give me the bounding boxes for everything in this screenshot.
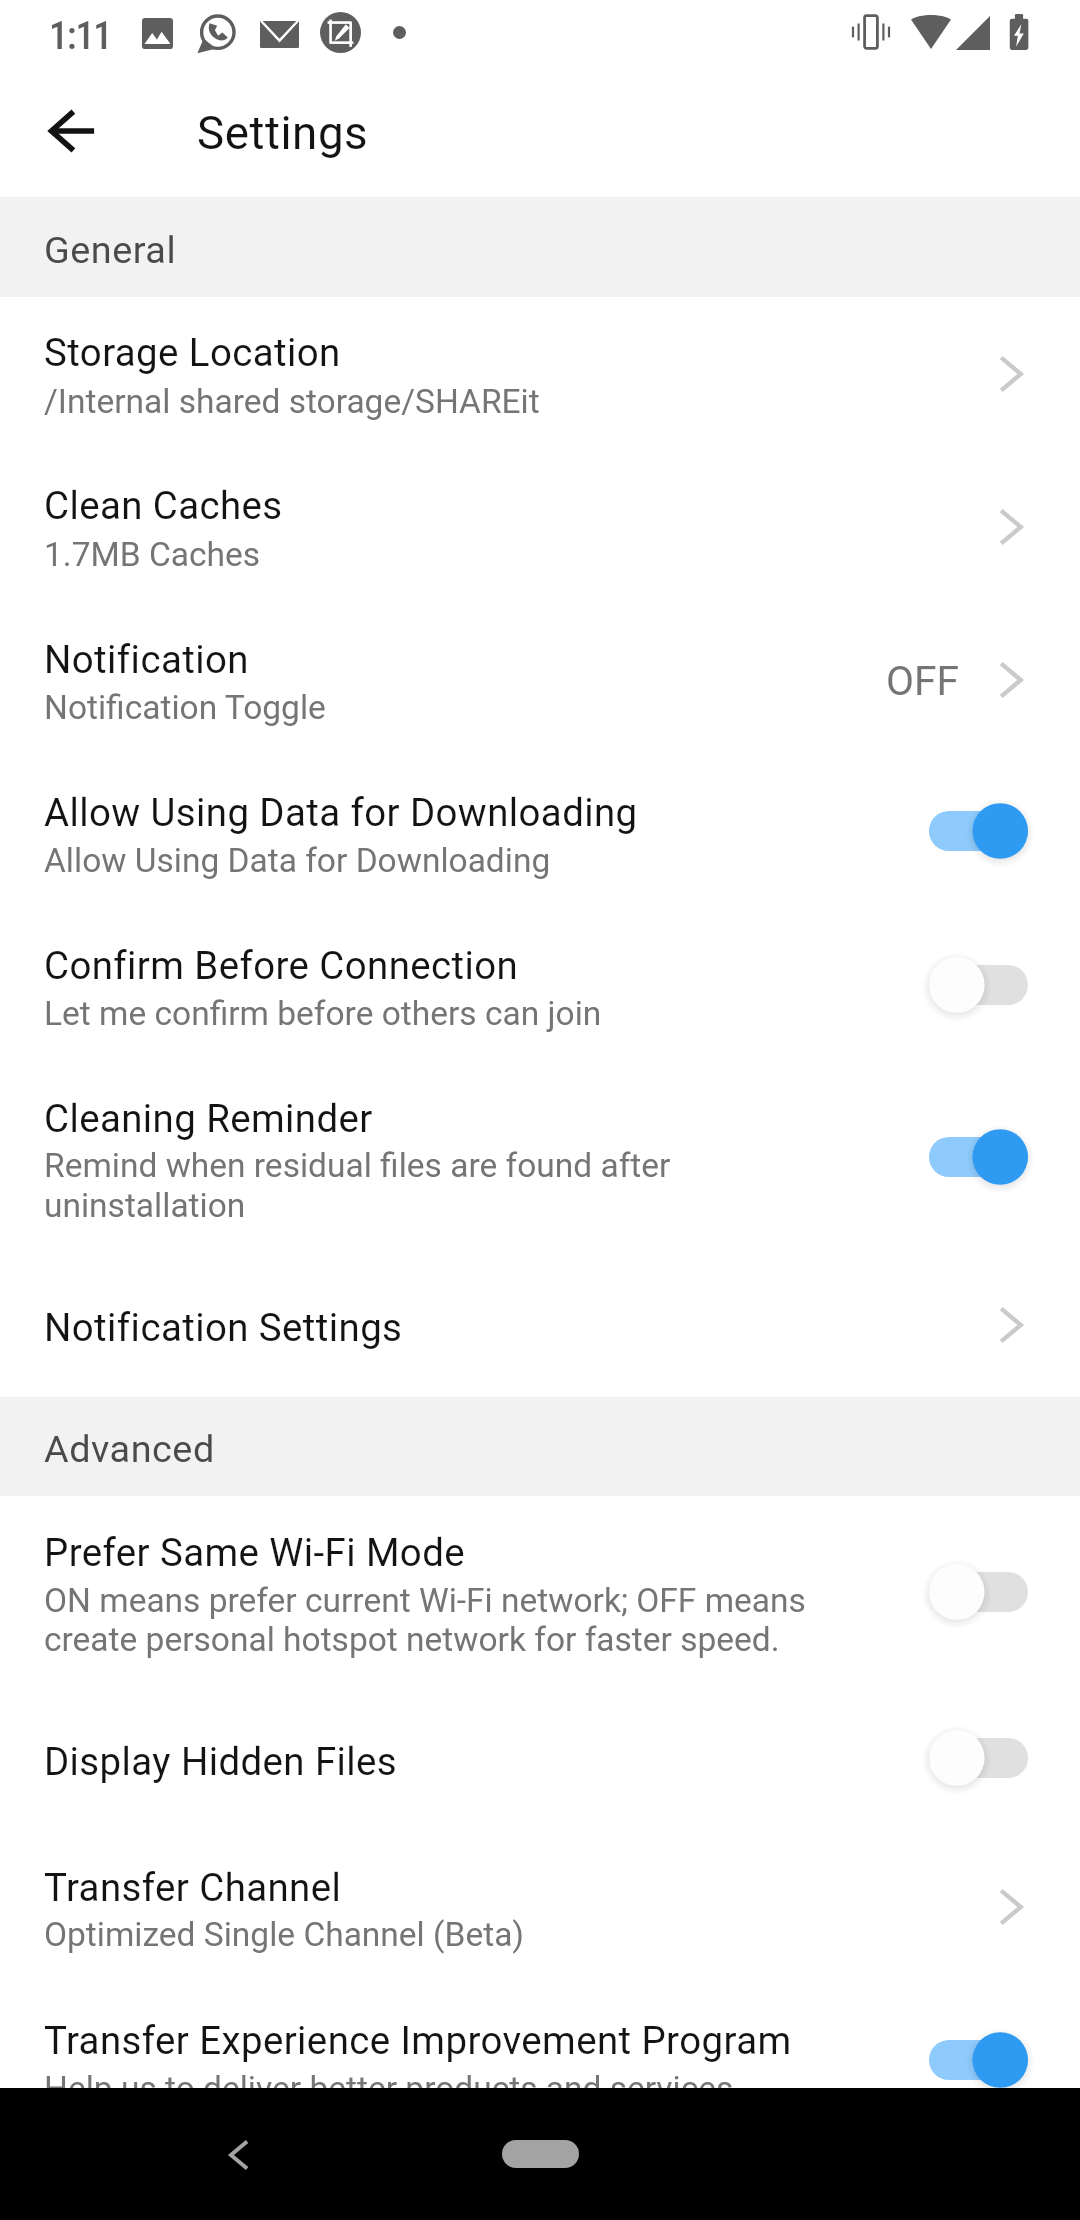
- button[interactable]: Open: [985, 1881, 1037, 1933]
- button[interactable]: Switch on: [906, 1109, 1051, 1205]
- staticText: General: [44, 228, 177, 272]
- staticText: 1.7MB Caches: [44, 535, 260, 574]
- staticText: Notification: [44, 637, 249, 682]
- button[interactable]: Home: [502, 2140, 579, 2168]
- staticText: Transfer Channel: [44, 1865, 342, 1910]
- button[interactable]: [0, 756, 1080, 909]
- button[interactable]: [0, 297, 1080, 450]
- staticText: create personal hotspot network for fast…: [44, 1620, 780, 1659]
- button[interactable]: Back: [17, 76, 127, 186]
- staticText: Notification Toggle: [44, 688, 326, 727]
- button[interactable]: [0, 603, 1080, 756]
- staticText: Prefer Same Wi-Fi Mode: [44, 1530, 465, 1575]
- staticText: uninstallation: [44, 1186, 246, 1225]
- staticText: Allow Using Data for Downloading: [44, 841, 551, 880]
- button[interactable]: Open: [985, 1299, 1037, 1351]
- button[interactable]: Switch off: [906, 1710, 1051, 1806]
- staticText: Advanced: [44, 1427, 215, 1471]
- staticText: Display Hidden Files: [44, 1739, 398, 1784]
- button[interactable]: [0, 909, 1080, 1063]
- staticText: Storage Location: [44, 330, 341, 375]
- staticText: OFF: [886, 657, 959, 705]
- button[interactable]: Open: [985, 348, 1037, 400]
- button[interactable]: [0, 1690, 1080, 1827]
- staticText: /Internal shared storage/SHAREit: [44, 382, 540, 421]
- staticText: 1:11: [49, 13, 112, 58]
- button[interactable]: Switch on: [906, 2012, 1051, 2108]
- staticText: ON means prefer current Wi-Fi network; O…: [44, 1581, 806, 1620]
- staticText: Notification Settings: [44, 1305, 403, 1350]
- button[interactable]: [0, 1254, 1080, 1397]
- button[interactable]: [0, 1063, 1080, 1254]
- staticText: Allow Using Data for Downloading: [44, 790, 638, 835]
- button[interactable]: Back: [183, 2099, 295, 2211]
- staticText: Settings: [197, 107, 369, 161]
- button[interactable]: Switch off: [906, 1544, 1051, 1640]
- staticText: Cleaning Reminder: [44, 1096, 373, 1141]
- button[interactable]: Switch off: [906, 937, 1051, 1033]
- button[interactable]: Open: [985, 501, 1037, 553]
- staticText: Let me confirm before others can join: [44, 994, 602, 1033]
- button[interactable]: [0, 1496, 1080, 1690]
- staticText: Transfer Experience Improvement Program: [44, 2018, 792, 2063]
- button[interactable]: [0, 1827, 1080, 1986]
- button[interactable]: [0, 450, 1080, 603]
- staticText: Remind when residual files are found aft…: [44, 1146, 671, 1185]
- button[interactable]: Open: [985, 654, 1037, 706]
- staticText: Help us to deliver better products and s…: [44, 2069, 734, 2108]
- button[interactable]: Switch on: [906, 783, 1051, 879]
- staticText: Confirm Before Connection: [44, 943, 519, 988]
- button[interactable]: [0, 1986, 1080, 2088]
- staticText: Optimized Single Channel (Beta): [44, 1915, 525, 1954]
- staticText: Clean Caches: [44, 483, 283, 528]
